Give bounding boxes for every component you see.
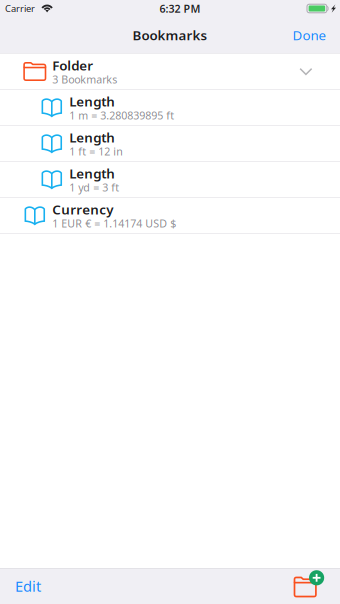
button[interactable]: [276, 568, 340, 604]
staticText: Bookmarks: [132, 26, 207, 44]
staticText: Folder: [52, 57, 93, 74]
staticText: Currency: [52, 201, 113, 218]
staticText: 1 m = 3.280839895 ft: [69, 108, 174, 122]
staticText: Length: [69, 93, 115, 110]
staticText: Length: [69, 165, 115, 182]
button[interactable]: Length: [0, 162, 340, 198]
button[interactable]: Done: [279, 17, 340, 53]
button[interactable]: Length: [0, 126, 340, 162]
staticText: Edit: [15, 576, 41, 596]
staticText: 3 Bookmarks: [52, 72, 117, 86]
staticText: Carrier: [5, 2, 35, 15]
button[interactable]: Length: [0, 90, 340, 126]
button[interactable]: Currency: [0, 198, 340, 234]
staticText: Done: [292, 26, 326, 44]
staticText: 6:32 PM: [160, 1, 201, 16]
staticText: 1 EUR € = 1.14174 USD $: [52, 216, 176, 230]
staticText: 1 yd = 3 ft: [69, 180, 119, 194]
staticText: 1 ft = 12 in: [69, 144, 123, 158]
button[interactable]: Edit: [0, 568, 56, 604]
staticText: Length: [69, 129, 115, 146]
button[interactable]: Folder: [0, 54, 340, 90]
